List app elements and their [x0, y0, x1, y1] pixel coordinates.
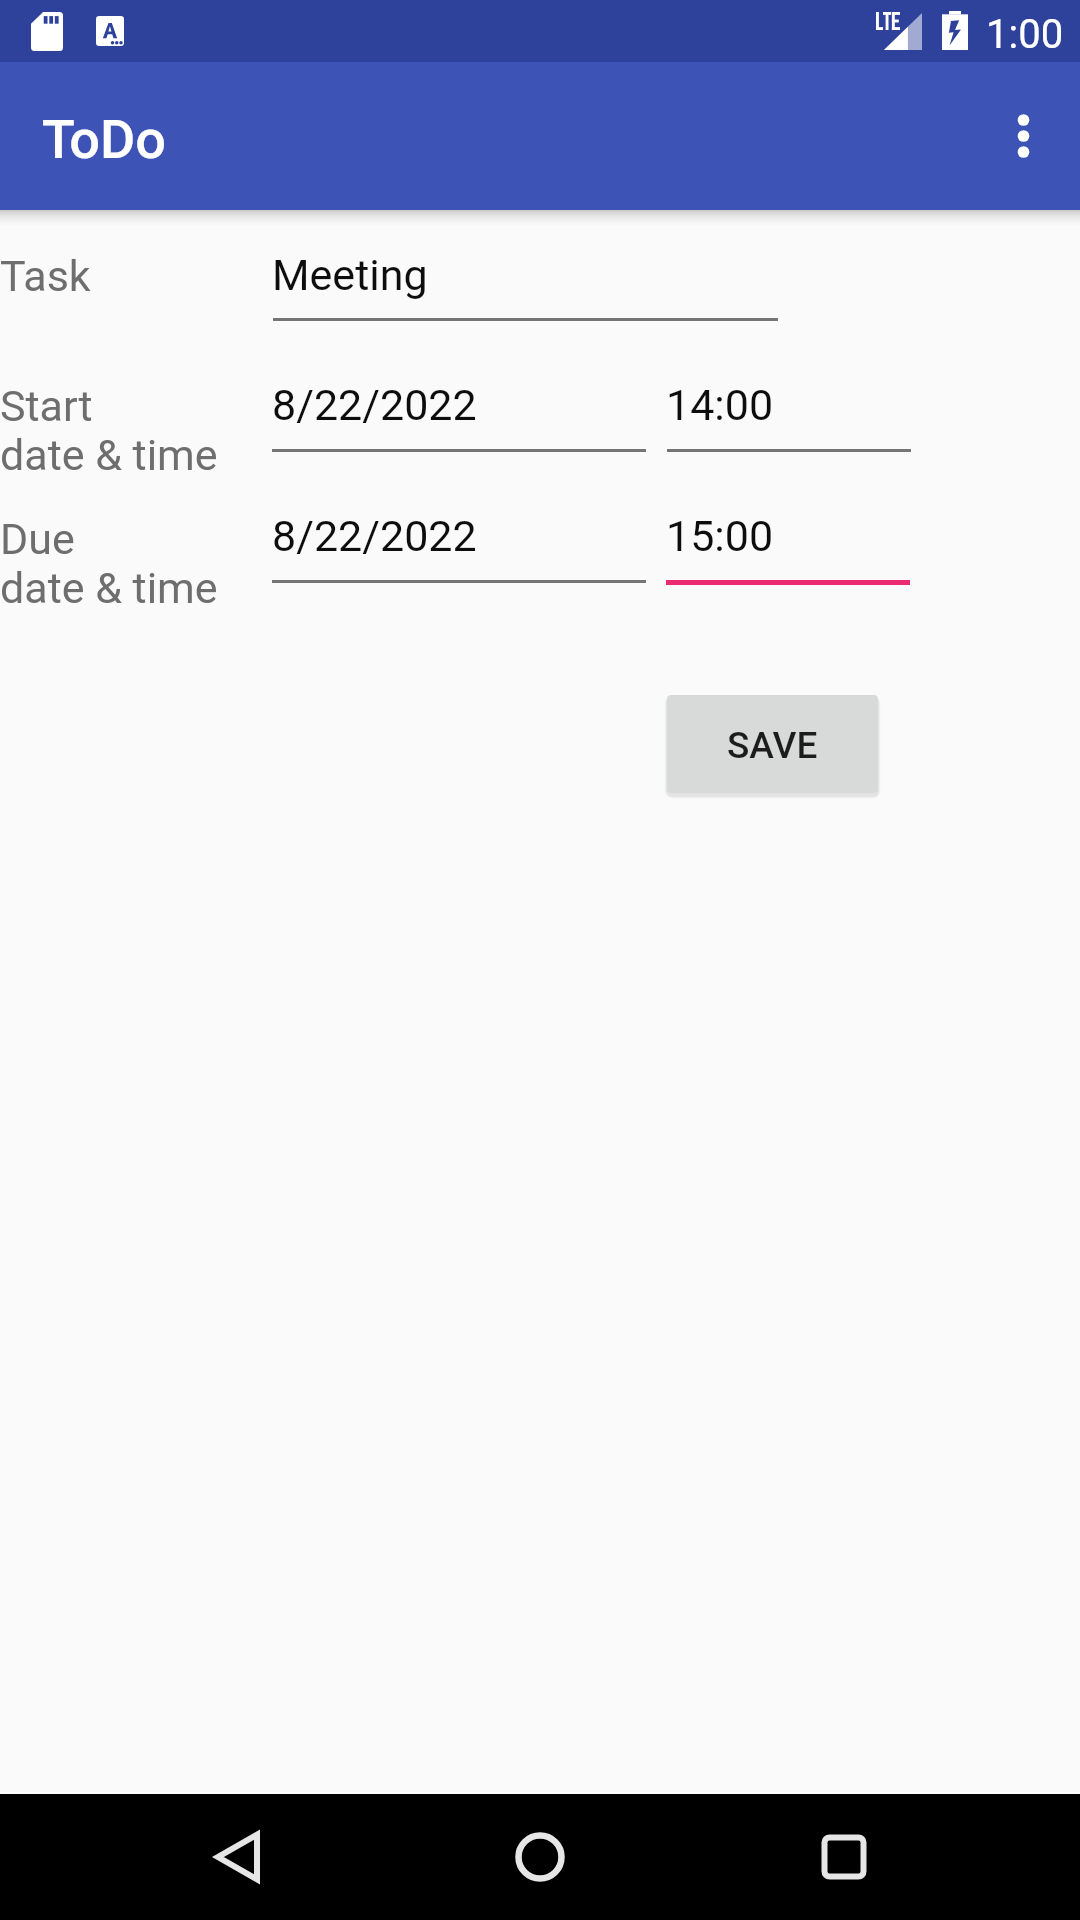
button[interactable]: Home [470, 1794, 610, 1920]
staticText: Start date & time [0, 381, 218, 480]
staticText: SAVE [727, 724, 818, 767]
button[interactable]: Back [169, 1794, 309, 1920]
button[interactable]: SAVE [667, 695, 878, 793]
button[interactable]: 14:00 [667, 375, 911, 452]
button[interactable]: 15:00 [666, 506, 910, 585]
button[interactable]: Recents [774, 1794, 914, 1920]
staticText: 1:00 [986, 11, 1064, 58]
staticText: Due date & time [0, 514, 218, 613]
staticText: Task [0, 251, 91, 301]
button[interactable]: More options [968, 62, 1078, 210]
staticText: ToDo [42, 108, 167, 171]
staticText: 14:00 [666, 380, 774, 430]
staticText: 8/22/2022 [272, 380, 477, 430]
button[interactable]: 8/22/2022 [272, 506, 646, 583]
staticText: Meeting [272, 250, 428, 300]
button[interactable]: 8/22/2022 [272, 375, 646, 452]
staticText: 15:00 [666, 511, 774, 561]
staticText: 8/22/2022 [272, 511, 477, 561]
button[interactable]: Meeting [273, 245, 778, 321]
